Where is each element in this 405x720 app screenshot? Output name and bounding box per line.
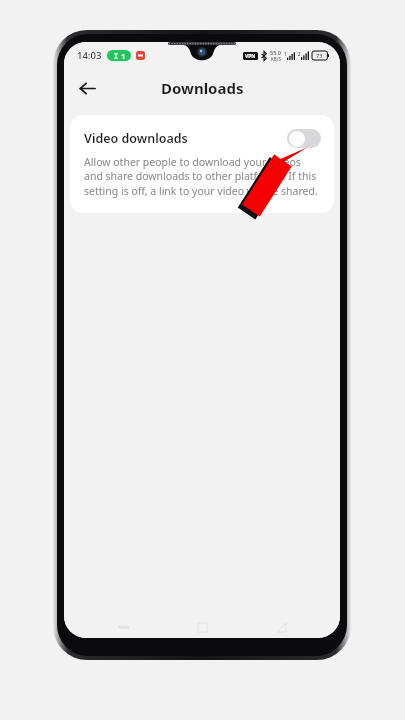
staticText: KB/S [271, 56, 281, 62]
button[interactable]: Video downloads toggle [287, 129, 321, 148]
button[interactable]: Video downloads [70, 115, 334, 213]
staticText: Video downloads [84, 130, 287, 147]
staticText: 73 [316, 52, 323, 59]
staticText: 2 [298, 51, 301, 57]
staticText: 14:03 [77, 49, 102, 62]
staticText: 55.0 [270, 49, 281, 56]
staticText: 1 [284, 51, 287, 57]
button[interactable]: Back [70, 71, 104, 105]
staticText: VPN [245, 53, 256, 60]
staticText: 1 [121, 51, 126, 61]
staticText: Allow other people to download your vide… [84, 155, 321, 198]
staticText: Downloads [161, 78, 244, 98]
